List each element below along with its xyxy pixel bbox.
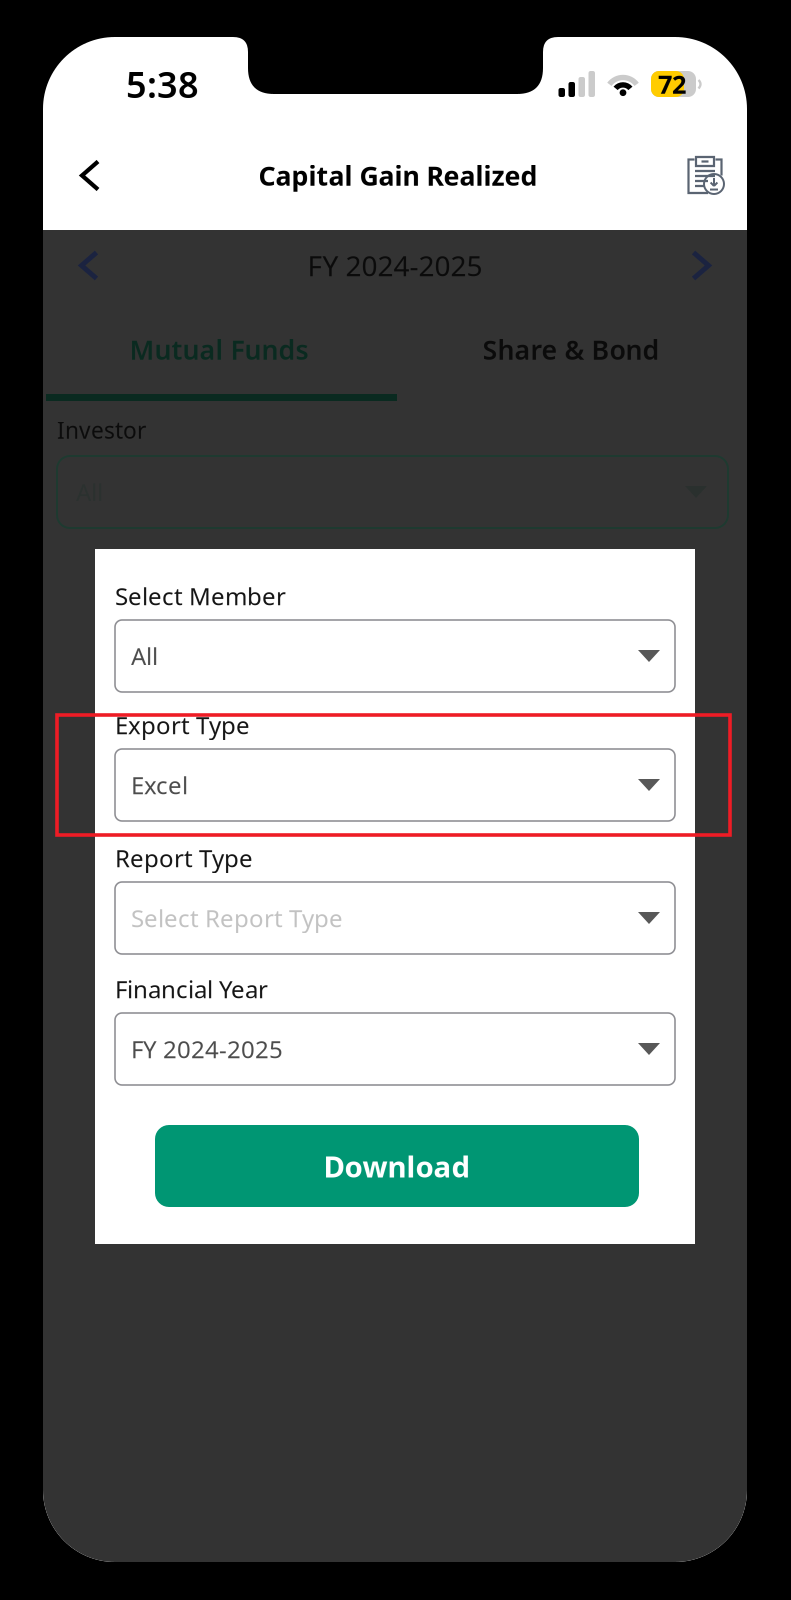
staticText: Share & Bond [482, 332, 659, 367]
staticText: Select Report Type [131, 902, 343, 934]
staticText: Capital Gain Realized [258, 158, 537, 193]
button[interactable]: Previous financial year [64, 237, 114, 293]
staticText: Mutual Funds [129, 332, 308, 367]
staticText: 5:38 [126, 60, 199, 108]
staticText: 72 [658, 67, 686, 101]
staticText: Select Member [115, 580, 286, 612]
staticText: FY 2024-2025 [131, 1033, 283, 1065]
staticText: Export Type [115, 709, 250, 741]
button[interactable]: Select Report Type [115, 882, 675, 954]
button[interactable]: Back [59, 140, 121, 210]
button[interactable]: Mutual Funds [43, 310, 395, 397]
staticText: Report Type [115, 842, 253, 874]
button[interactable]: Download [155, 1125, 639, 1207]
button[interactable]: Download report [675, 140, 737, 210]
button[interactable]: Share & Bond [395, 310, 747, 397]
staticText: Download [323, 1146, 470, 1185]
staticText: Financial Year [115, 973, 268, 1005]
button[interactable]: Excel [115, 749, 675, 821]
staticText: Excel [131, 769, 188, 801]
button[interactable]: Next financial year [676, 237, 726, 293]
staticText: All [131, 640, 158, 672]
button[interactable]: All [115, 620, 675, 692]
staticText: Investor [57, 415, 146, 445]
button[interactable]: FY 2024-2025 [115, 1013, 675, 1085]
staticText: FY 2024-2025 [307, 247, 482, 284]
